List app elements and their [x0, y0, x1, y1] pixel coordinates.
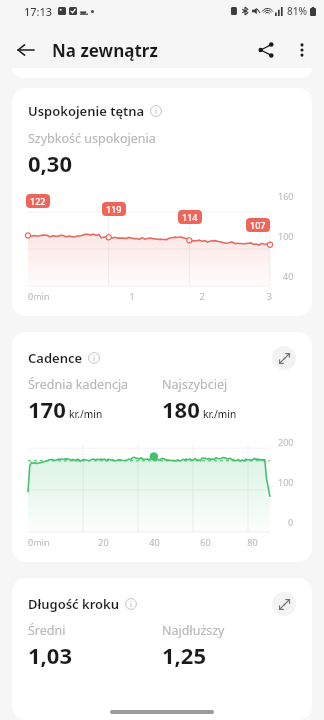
- staticText: 2: [167, 290, 237, 302]
- staticText: kr./min: [69, 407, 103, 421]
- staticText: 107: [250, 219, 266, 231]
- staticText: kr./min: [203, 407, 237, 421]
- staticText: 114: [182, 211, 198, 223]
- staticText: Cadence: [28, 349, 83, 367]
- staticText: 80: [231, 536, 274, 548]
- staticText: 3: [237, 290, 272, 302]
- staticText: 40: [283, 270, 294, 282]
- button[interactable]: Back: [8, 32, 44, 68]
- staticText: Uspokojenie tętna: [28, 102, 145, 120]
- staticText: 1,03: [28, 640, 73, 670]
- staticText: Najszybciej: [162, 376, 228, 393]
- button[interactable]: Długość kroku: [12, 578, 312, 720]
- staticText: 1,25: [162, 640, 207, 670]
- staticText: Na zewnątrz: [52, 39, 158, 62]
- button[interactable]: More options: [284, 32, 320, 68]
- button[interactable]: Cadence: [12, 332, 312, 562]
- staticText: 0min: [28, 536, 78, 548]
- button[interactable]: Expand chart: [272, 592, 296, 616]
- staticText: 119: [106, 203, 122, 215]
- staticText: 60: [180, 536, 231, 548]
- staticText: 17:13: [24, 4, 53, 19]
- staticText: 180: [162, 394, 200, 424]
- staticText: 0,30: [28, 148, 73, 178]
- staticText: 100: [278, 230, 294, 242]
- staticText: 40: [129, 536, 180, 548]
- staticText: 122: [30, 195, 46, 207]
- button[interactable]: Share: [248, 32, 284, 68]
- staticText: 81%: [287, 4, 307, 18]
- staticText: 1: [97, 290, 167, 302]
- staticText: 170: [28, 394, 66, 424]
- staticText: Średni: [28, 622, 66, 639]
- staticText: 0min: [28, 290, 97, 302]
- button[interactable]: Expand chart: [272, 346, 296, 370]
- staticText: Szybkość uspokojenia: [28, 130, 156, 147]
- staticText: 20: [78, 536, 129, 548]
- button[interactable]: Uspokojenie tętna: [12, 88, 312, 316]
- staticText: 100: [278, 476, 294, 488]
- staticText: Najdłuższy: [162, 622, 225, 639]
- staticText: 0: [288, 516, 294, 528]
- staticText: Średnia kadencja: [28, 376, 129, 393]
- staticText: 160: [278, 190, 294, 202]
- staticText: Długość kroku: [28, 595, 120, 613]
- staticText: 200: [278, 436, 294, 448]
